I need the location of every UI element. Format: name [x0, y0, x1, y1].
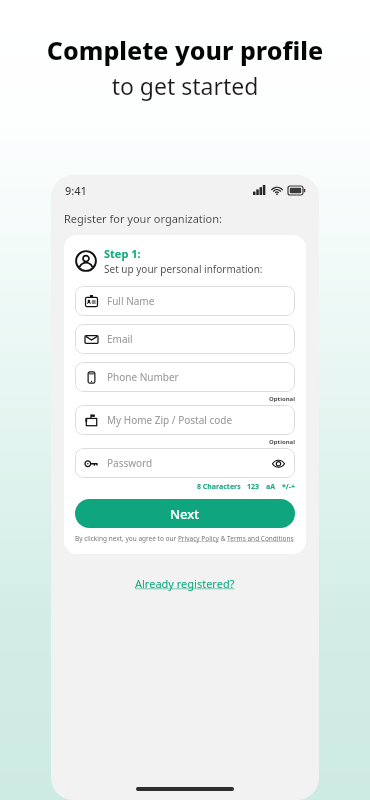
- button[interactable]: Full Name: [75, 286, 295, 316]
- staticText: Already registered?: [135, 576, 235, 591]
- staticText: Register for your organization:: [64, 211, 223, 226]
- button[interactable]: Next: [75, 499, 295, 528]
- staticText: Next: [170, 505, 200, 523]
- staticText: 8 Characters: [197, 482, 241, 492]
- staticText: Full Name: [107, 294, 155, 308]
- staticText: Email: [107, 332, 133, 346]
- staticText: to get started: [0, 70, 370, 101]
- staticText: Complete your profile: [0, 33, 370, 67]
- staticText: Optional: [269, 395, 295, 403]
- button[interactable]: Already registered?: [131, 574, 239, 593]
- button[interactable]: Phone Number: [75, 362, 295, 392]
- staticText: Phone Number: [107, 370, 179, 384]
- button[interactable]: My Home Zip / Postal code: [75, 405, 295, 435]
- staticText: Password: [107, 456, 153, 470]
- button[interactable]: Show password: [270, 455, 286, 471]
- staticText: By clicking next, you agree to our Priva…: [75, 534, 295, 543]
- button[interactable]: Email: [75, 324, 295, 354]
- staticText: 9:41: [65, 183, 87, 198]
- staticText: Step 1:: [104, 246, 141, 261]
- staticText: 123: [247, 482, 260, 492]
- staticText: Set up your personal information:: [104, 262, 263, 276]
- staticText: */-+: [282, 482, 295, 492]
- staticText: aA: [266, 482, 276, 492]
- button[interactable]: Password: [75, 448, 295, 478]
- staticText: Optional: [269, 438, 295, 446]
- staticText: My Home Zip / Postal code: [107, 413, 233, 427]
